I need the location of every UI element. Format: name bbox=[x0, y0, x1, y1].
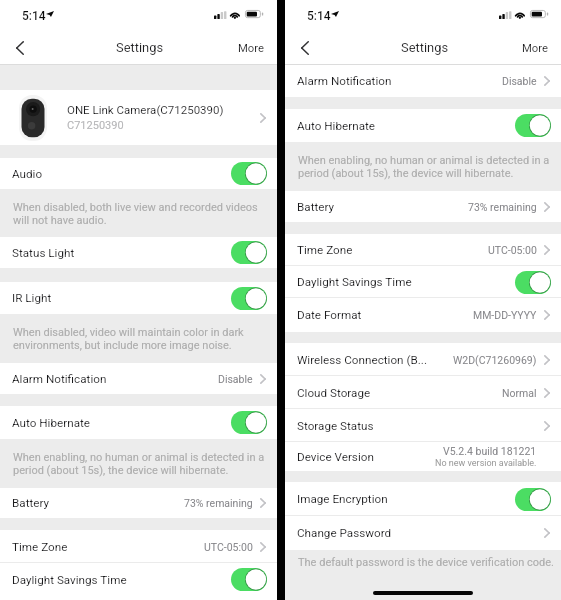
button[interactable]: Storage Status bbox=[285, 409, 561, 442]
staticText: When enabling, no human or animal is det… bbox=[13, 451, 265, 476]
staticText: V5.2.4 build 181221 bbox=[443, 445, 537, 457]
button[interactable]: More bbox=[508, 30, 561, 65]
button[interactable]: Battery bbox=[0, 488, 277, 518]
staticText: 5:14 bbox=[22, 9, 46, 23]
button[interactable]: Battery bbox=[285, 191, 561, 222]
button[interactable]: Device Version bbox=[285, 442, 561, 471]
staticText: Wireless Connection (B... bbox=[297, 353, 427, 367]
staticText: Device Version bbox=[297, 450, 374, 464]
button[interactable]: Image Encryption bbox=[515, 488, 551, 511]
staticText: IR Light bbox=[12, 291, 52, 305]
staticText: Settings bbox=[116, 40, 164, 55]
staticText: 5:14 bbox=[307, 9, 331, 23]
button[interactable]: Auto Hibernate bbox=[515, 114, 551, 137]
staticText: Alarm Notification bbox=[12, 372, 107, 386]
button[interactable]: Status Light bbox=[231, 241, 267, 264]
button[interactable]: Time Zone bbox=[0, 530, 277, 563]
staticText: Settings bbox=[401, 40, 449, 55]
button[interactable]: IR Light bbox=[0, 282, 277, 314]
staticText: Alarm Notification bbox=[297, 74, 392, 88]
staticText: Daylight Savings Time bbox=[12, 573, 127, 587]
staticText: Auto Hibernate bbox=[297, 119, 376, 133]
staticText: ONE Link Camera(C71250390) bbox=[67, 103, 224, 116]
button[interactable]: Alarm Notification bbox=[0, 363, 277, 394]
staticText: UTC-05:00 bbox=[204, 541, 253, 553]
staticText: Status Light bbox=[12, 246, 75, 260]
button[interactable]: Back bbox=[0, 30, 40, 65]
staticText: Battery bbox=[12, 496, 50, 510]
button[interactable]: Daylight Savings Time bbox=[0, 563, 277, 596]
button[interactable]: Daylight Savings Time bbox=[231, 568, 267, 591]
button[interactable]: Daylight Savings Time bbox=[285, 266, 561, 298]
staticText: 73% remaining bbox=[184, 497, 253, 509]
staticText: Time Zone bbox=[12, 540, 68, 554]
staticText: More bbox=[238, 42, 265, 55]
staticText: W2D(C71260969) bbox=[453, 354, 537, 366]
staticText: Image Encryption bbox=[297, 492, 388, 506]
button[interactable]: Daylight Savings Time bbox=[515, 271, 551, 294]
staticText: Disable bbox=[502, 75, 537, 87]
staticText: When disabled, both live view and record… bbox=[13, 201, 258, 226]
button[interactable]: Alarm Notification bbox=[285, 65, 561, 97]
staticText: No new version available. bbox=[435, 458, 537, 469]
button[interactable]: Cloud Storage bbox=[285, 376, 561, 409]
button[interactable]: Wireless Connection (B... bbox=[285, 343, 561, 376]
staticText: 73% remaining bbox=[468, 201, 537, 213]
button[interactable]: Auto Hibernate bbox=[0, 406, 277, 439]
staticText: Auto Hibernate bbox=[12, 416, 91, 430]
staticText: C71250390 bbox=[67, 119, 124, 132]
button[interactable]: Auto Hibernate bbox=[285, 109, 561, 142]
button[interactable]: Back bbox=[285, 30, 325, 65]
staticText: Change Password bbox=[297, 526, 392, 540]
staticText: When enabling, no human or animal is det… bbox=[298, 154, 550, 179]
button[interactable]: ONE Link Camera(C71250390) bbox=[0, 90, 277, 145]
staticText: Battery bbox=[297, 200, 335, 214]
staticText: Date Format bbox=[297, 308, 362, 322]
button[interactable]: Audio bbox=[231, 162, 267, 185]
staticText: UTC-05:00 bbox=[488, 244, 537, 256]
button[interactable]: Date Format bbox=[285, 298, 561, 332]
button[interactable]: Time Zone bbox=[285, 234, 561, 266]
button[interactable]: Audio bbox=[0, 158, 277, 189]
button[interactable]: Change Password bbox=[285, 516, 561, 550]
staticText: Time Zone bbox=[297, 243, 353, 257]
staticText: More bbox=[522, 42, 549, 55]
button[interactable]: Status Light bbox=[0, 237, 277, 268]
staticText: Disable bbox=[218, 373, 253, 385]
button[interactable]: IR Light bbox=[231, 287, 267, 310]
button[interactable]: Auto Hibernate bbox=[231, 411, 267, 434]
staticText: Audio bbox=[12, 167, 43, 181]
staticText: Daylight Savings Time bbox=[297, 275, 412, 289]
staticText: Normal bbox=[502, 387, 537, 399]
staticText: The default password is the device verif… bbox=[298, 556, 554, 569]
staticText: Storage Status bbox=[297, 419, 374, 433]
staticText: When disabled, video will maintain color… bbox=[13, 326, 244, 351]
staticText: Cloud Storage bbox=[297, 386, 371, 400]
button[interactable]: More bbox=[224, 30, 277, 65]
staticText: MM-DD-YYYY bbox=[473, 309, 537, 321]
button[interactable]: Image Encryption bbox=[285, 482, 561, 516]
